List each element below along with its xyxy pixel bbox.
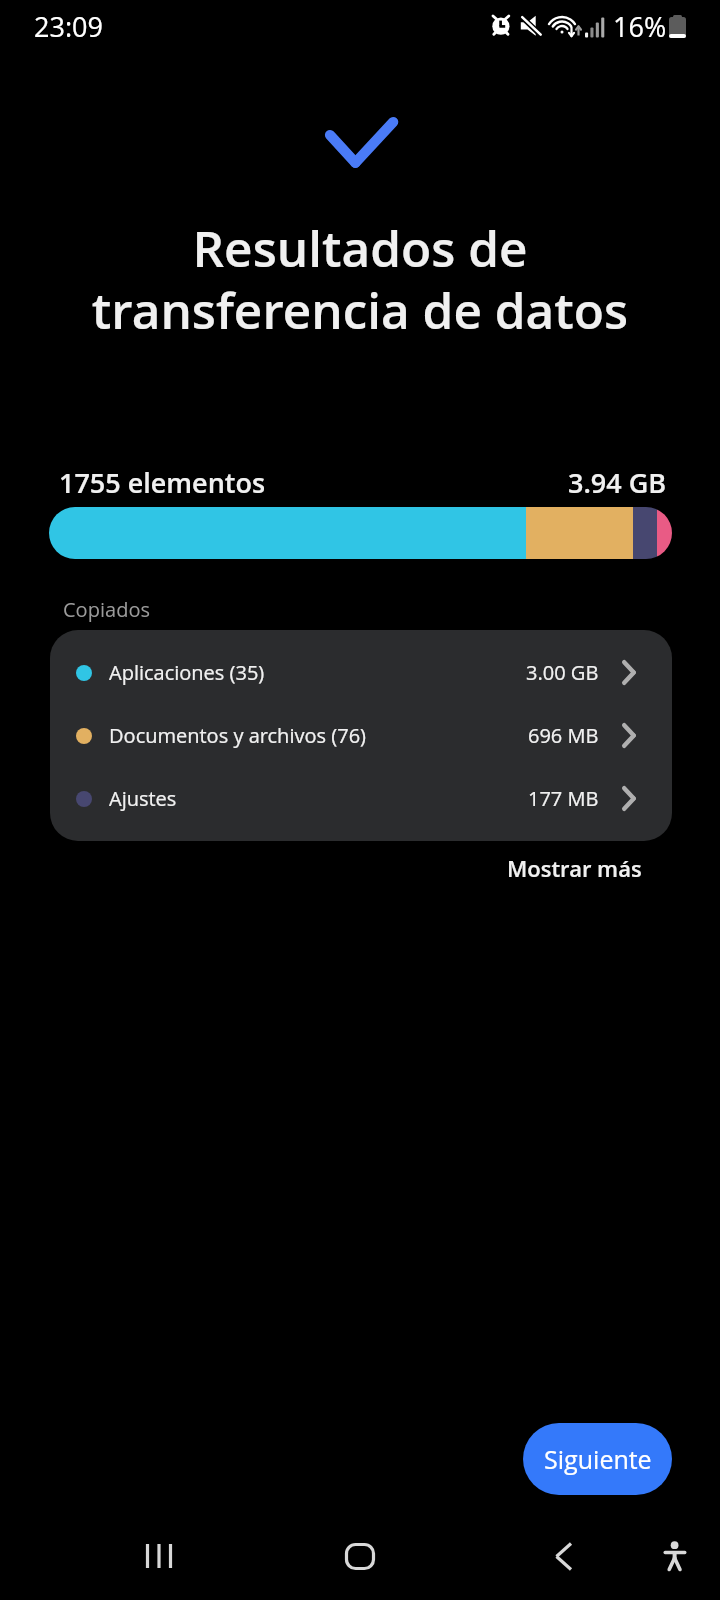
staticText: Ajustes xyxy=(109,785,177,812)
button[interactable]: Recents xyxy=(106,1516,212,1596)
button[interactable]: Documentos y archivos (76) xyxy=(50,704,672,767)
staticText: 16% xyxy=(613,8,667,45)
staticText: 696 MB xyxy=(528,722,599,749)
staticText: 1755 elementos xyxy=(59,464,266,501)
staticText: Documentos y archivos (76) xyxy=(109,722,366,749)
staticText: 177 MB xyxy=(528,785,599,812)
button[interactable]: Aplicaciones (35) xyxy=(50,641,672,704)
button[interactable]: Siguiente xyxy=(523,1423,672,1495)
staticText: Siguiente xyxy=(544,1442,652,1476)
button[interactable]: Accessibility xyxy=(622,1516,720,1596)
staticText: 3.00 GB xyxy=(526,659,599,686)
staticText: Mostrar más xyxy=(507,853,642,883)
staticText: 23:09 xyxy=(34,8,103,45)
staticText: Aplicaciones (35) xyxy=(109,659,265,686)
button[interactable]: Back xyxy=(510,1516,616,1596)
staticText: Copiados xyxy=(63,596,151,623)
staticText: 3.94 GB xyxy=(568,464,667,501)
button[interactable]: Mostrar más xyxy=(492,845,657,891)
staticText: Resultados de transferencia de datos xyxy=(0,214,720,343)
button[interactable]: Ajustes xyxy=(50,767,672,830)
button[interactable]: Home xyxy=(307,1516,413,1596)
